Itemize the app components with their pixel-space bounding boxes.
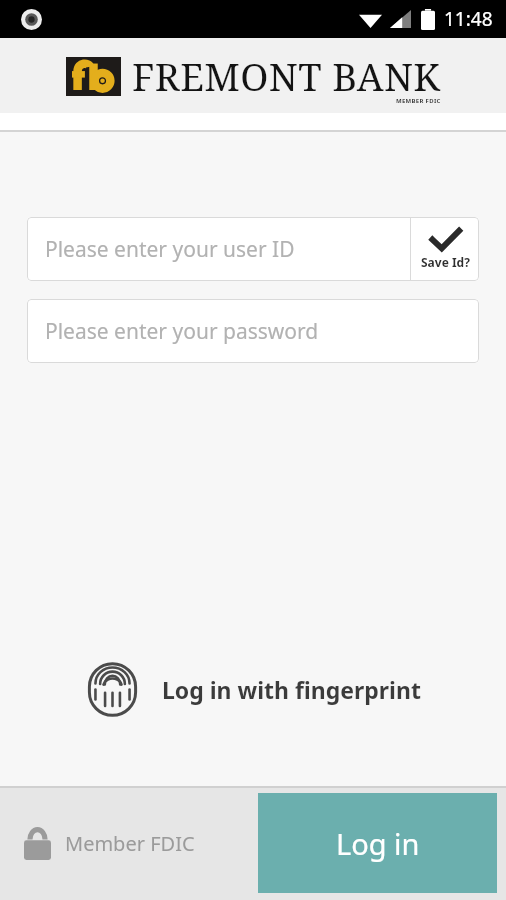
staticText: FREMONT BANK [132, 50, 441, 102]
staticText: 11:48 [444, 6, 493, 32]
button[interactable]: Log in with fingerprint [0, 654, 506, 724]
staticText: Log in with fingerprint [162, 674, 421, 705]
staticText: Please enter your password [45, 317, 319, 346]
staticText: Member FDIC [65, 830, 195, 857]
staticText: MEMBER FDIC [396, 97, 441, 105]
button[interactable]: Save Id [411, 217, 479, 281]
button[interactable]: Please enter your password [27, 299, 479, 363]
staticText: Log in [336, 824, 420, 863]
button[interactable]: Log in [258, 793, 497, 893]
staticText: Save Id? [421, 254, 470, 270]
button[interactable]: Please enter your user ID [27, 217, 410, 281]
button[interactable]: Member FDIC [24, 827, 195, 860]
staticText: Please enter your user ID [45, 235, 295, 264]
